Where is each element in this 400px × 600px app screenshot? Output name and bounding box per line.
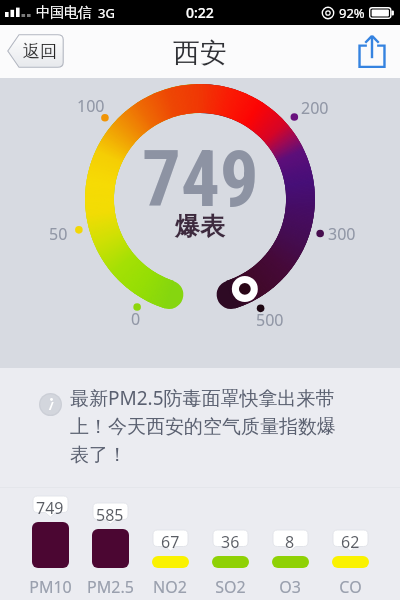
button[interactable]: 36	[200, 490, 260, 600]
staticText: 0:22	[186, 3, 214, 22]
staticText: PM10	[29, 576, 72, 598]
button[interactable]: 返回	[7, 34, 64, 68]
staticText: 返回	[23, 41, 57, 62]
staticText: 爆表	[175, 211, 225, 242]
button[interactable]: 62	[320, 490, 380, 600]
staticText: 0	[131, 308, 141, 330]
staticText: CO	[339, 576, 362, 598]
button[interactable]: 8	[260, 490, 320, 600]
staticText: 8	[285, 531, 295, 553]
staticText: 36	[221, 531, 240, 553]
button[interactable]: 585	[80, 490, 140, 600]
staticText: 585	[96, 504, 124, 526]
staticText: 300	[328, 223, 356, 245]
staticText: SO2	[215, 576, 246, 598]
staticText: PM2.5	[87, 576, 134, 598]
staticText: 200	[301, 97, 329, 119]
button[interactable]: 67	[140, 490, 200, 600]
staticText: 中国电信	[36, 4, 92, 22]
staticText: 749	[142, 135, 259, 225]
staticText: 100	[77, 95, 105, 117]
staticText: 最新PM2.5防毒面罩快拿出来带上！今天西安的空气质量指数爆表了！	[70, 385, 345, 467]
staticText: 西安	[173, 36, 227, 70]
staticText: 92%	[339, 4, 365, 22]
staticText: 500	[256, 309, 284, 331]
button[interactable]: 749	[20, 490, 80, 600]
staticText: NO2	[153, 576, 187, 598]
button[interactable]: Share	[356, 33, 388, 69]
staticText: O3	[279, 576, 301, 598]
staticText: 62	[341, 531, 360, 553]
staticText: 50	[49, 223, 68, 245]
staticText: 67	[161, 531, 180, 553]
staticText: 3G	[98, 4, 115, 22]
staticText: 749	[36, 497, 64, 519]
